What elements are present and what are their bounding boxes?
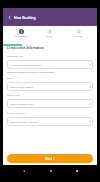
button[interactable]: Back xyxy=(6,14,13,21)
staticText: Order xyxy=(46,35,53,38)
staticText: 3 xyxy=(78,30,80,34)
button[interactable]: 2 xyxy=(35,29,64,38)
staticText: Selecting different construction site wi… xyxy=(7,71,55,74)
staticText: Depot* xyxy=(7,77,14,80)
button[interactable]: 1 xyxy=(7,29,35,38)
button[interactable]: Recent apps xyxy=(72,166,81,175)
staticText: 2 xyxy=(49,30,51,34)
button[interactable]: Next xyxy=(7,154,93,163)
staticText: Select delivery type xyxy=(10,102,33,105)
button[interactable]: Back xyxy=(19,166,28,175)
button[interactable]: Select depot details xyxy=(7,82,93,91)
staticText: Construction Information xyxy=(7,46,45,50)
button[interactable]: 3 xyxy=(64,29,93,38)
button[interactable]: Select payment method xyxy=(7,117,93,126)
button[interactable]: Select delivery type xyxy=(7,99,93,108)
button[interactable]: Select construction details xyxy=(7,60,93,69)
staticText: Delivery Type* xyxy=(7,94,20,97)
staticText: Review xyxy=(75,35,83,38)
staticText: New Booking xyxy=(14,15,36,20)
staticText: Construction xyxy=(14,35,28,38)
staticText: Payment Condition* xyxy=(7,112,26,115)
staticText: Next xyxy=(45,157,52,161)
staticText: 1 xyxy=(21,30,23,34)
staticText: Select construction details xyxy=(10,63,41,66)
staticText: Select depot details xyxy=(10,85,33,88)
staticText: Construction Site* xyxy=(7,55,24,58)
staticText: Select payment method xyxy=(10,120,38,123)
button[interactable]: Home xyxy=(46,166,55,175)
